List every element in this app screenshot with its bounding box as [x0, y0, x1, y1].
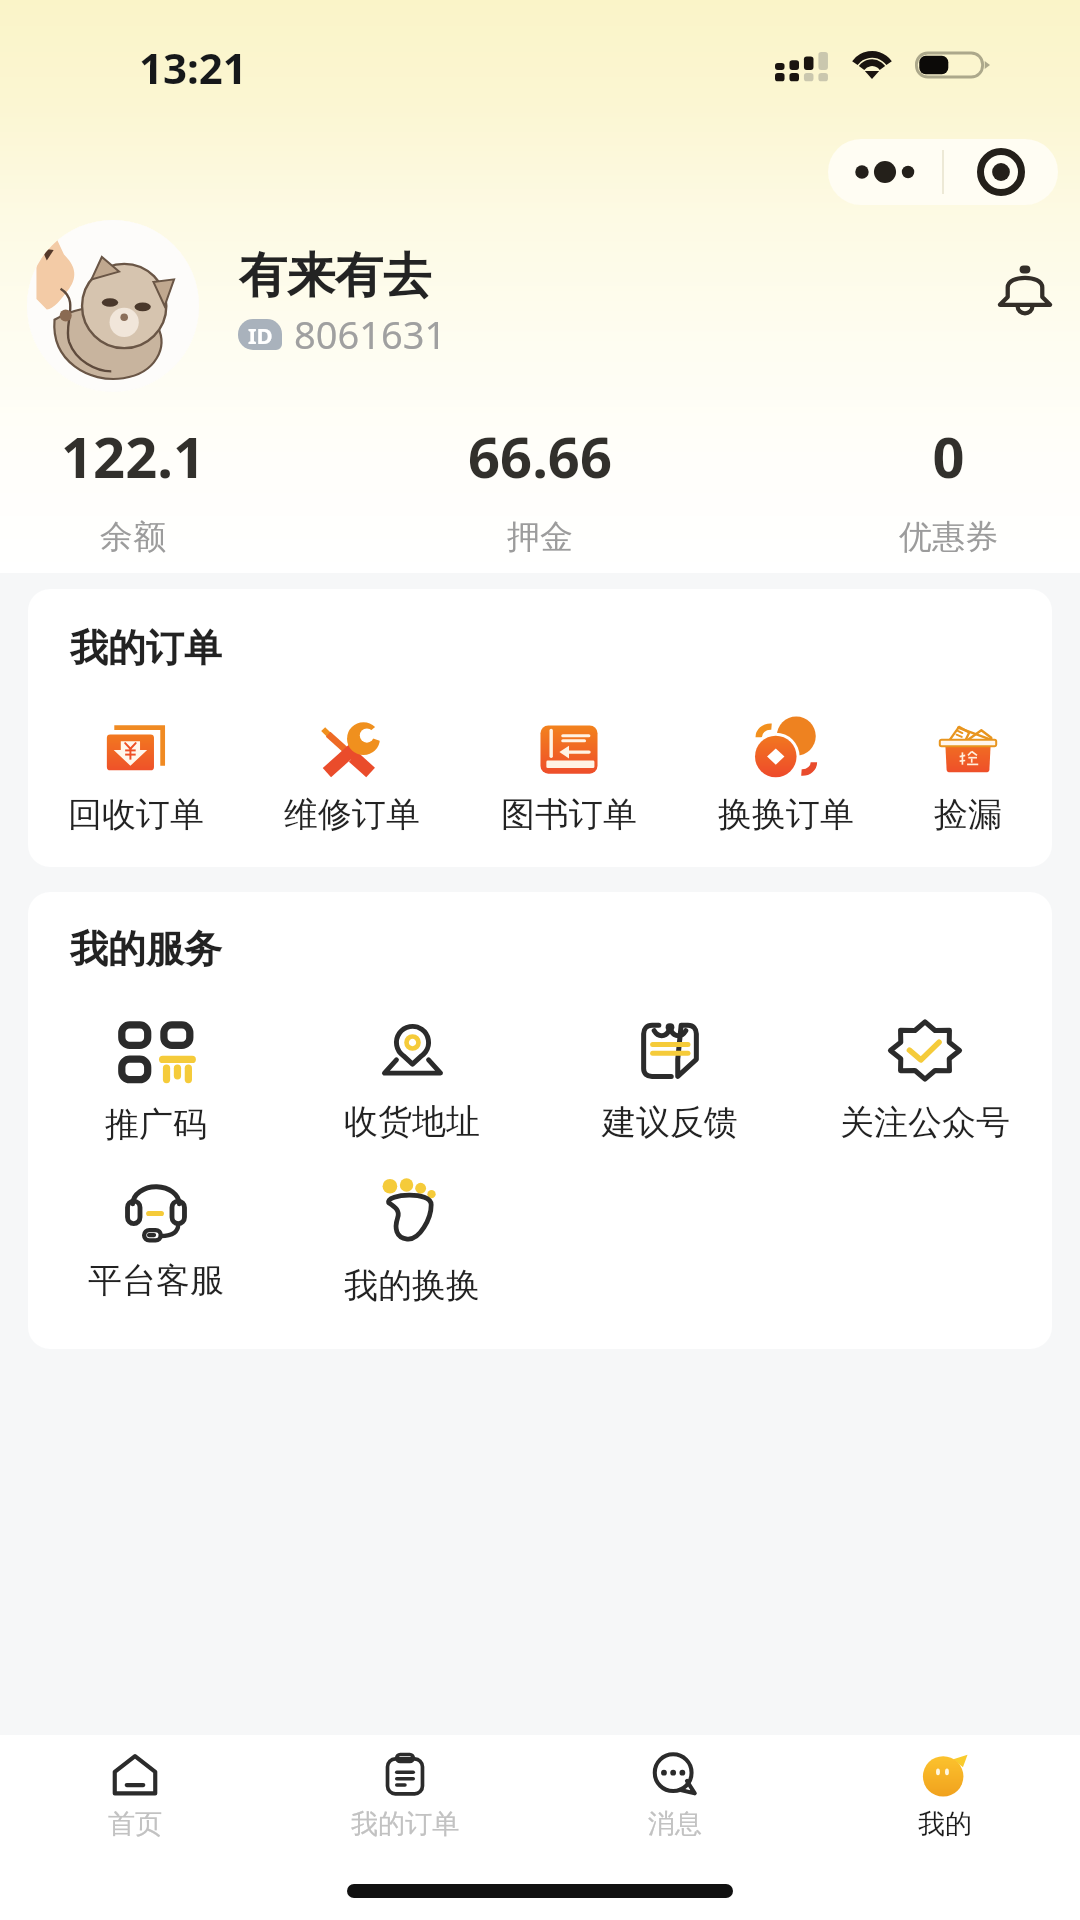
- button[interactable]: 收货地址: [302, 1020, 522, 1143]
- button[interactable]: More options: [828, 139, 1058, 205]
- staticText: 首页: [108, 1807, 162, 1841]
- button[interactable]: 我的换换: [302, 1178, 522, 1307]
- staticText: 捡漏: [934, 793, 1002, 836]
- staticText: 我的服务: [70, 925, 222, 973]
- staticText: 我的换换: [344, 1264, 480, 1307]
- button[interactable]: 回收订单: [26, 721, 246, 836]
- other: More options: [828, 139, 942, 205]
- button[interactable]: 0: [808, 418, 1080, 558]
- button[interactable]: 图书订单: [459, 721, 679, 836]
- staticText: 建议反馈: [602, 1101, 738, 1144]
- staticText: 换换订单: [718, 793, 854, 836]
- staticText: 回收订单: [68, 793, 204, 836]
- button[interactable]: 建议反馈: [560, 1020, 780, 1144]
- staticText: 122.1: [61, 418, 205, 494]
- button[interactable]: 平台客服: [46, 1182, 266, 1302]
- button[interactable]: 换换订单: [676, 721, 896, 836]
- staticText: 押金: [507, 516, 573, 558]
- button[interactable]: 捡漏: [858, 721, 1078, 836]
- button[interactable]: 关注公众号: [815, 1020, 1035, 1144]
- staticText: 我的订单: [70, 624, 222, 672]
- button[interactable]: 我的订单: [270, 1735, 540, 1870]
- button[interactable]: 消息: [540, 1735, 810, 1870]
- staticText: 收货地址: [344, 1100, 480, 1143]
- button[interactable]: 122.1: [0, 418, 273, 558]
- staticText: 优惠券: [899, 516, 998, 558]
- staticText: 平台客服: [88, 1259, 224, 1302]
- staticText: 8061631: [294, 308, 447, 360]
- staticText: 图书订单: [501, 793, 637, 836]
- staticText: ID: [248, 320, 273, 350]
- staticText: 0: [932, 418, 965, 494]
- button[interactable]: 维修订单: [242, 721, 462, 836]
- button[interactable]: Avatar: [27, 220, 199, 392]
- staticText: 关注公众号: [840, 1101, 1010, 1144]
- staticText: 消息: [648, 1807, 702, 1841]
- button[interactable]: 推广码: [46, 1020, 266, 1146]
- button[interactable]: 我的: [810, 1735, 1080, 1870]
- button[interactable]: Notifications: [988, 258, 1062, 320]
- staticText: 我的订单: [351, 1807, 459, 1841]
- staticText: 66.66: [468, 418, 612, 494]
- staticText: 我的: [918, 1807, 972, 1841]
- staticText: 13:21: [139, 39, 247, 96]
- staticText: 有来有去: [239, 246, 431, 306]
- staticText: 余额: [100, 516, 166, 558]
- button[interactable]: 首页: [0, 1735, 270, 1870]
- button[interactable]: 66.66: [400, 418, 680, 558]
- other: Close mini program: [944, 139, 1058, 205]
- staticText: 维修订单: [284, 793, 420, 836]
- staticText: 推广码: [105, 1103, 207, 1146]
